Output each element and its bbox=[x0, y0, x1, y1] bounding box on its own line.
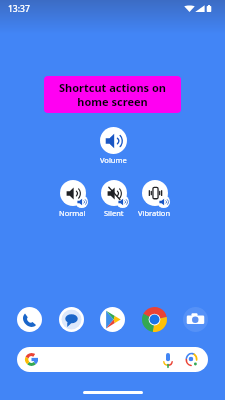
button[interactable]: Shortcut actions on home screen bbox=[44, 76, 181, 113]
button[interactable]: Volume bbox=[88, 127, 139, 165]
staticText: Vibration bbox=[138, 208, 171, 218]
button[interactable]: Messages bbox=[59, 307, 84, 332]
button[interactable]: Camera bbox=[183, 307, 208, 332]
button[interactable] bbox=[17, 347, 208, 372]
staticText: Normal bbox=[59, 208, 86, 218]
button[interactable]: Vibration bbox=[135, 180, 174, 218]
button[interactable]: Play Store bbox=[100, 307, 125, 332]
button[interactable]: Silent bbox=[94, 180, 133, 218]
button[interactable]: Normal bbox=[53, 180, 92, 218]
staticText: Shortcut actions on home screen bbox=[59, 80, 166, 109]
staticText: 13:37 bbox=[8, 3, 30, 15]
staticText: Volume bbox=[100, 155, 127, 165]
button[interactable]: Chrome bbox=[142, 307, 167, 332]
button[interactable]: Phone bbox=[17, 307, 42, 332]
staticText: Silent bbox=[104, 208, 124, 218]
